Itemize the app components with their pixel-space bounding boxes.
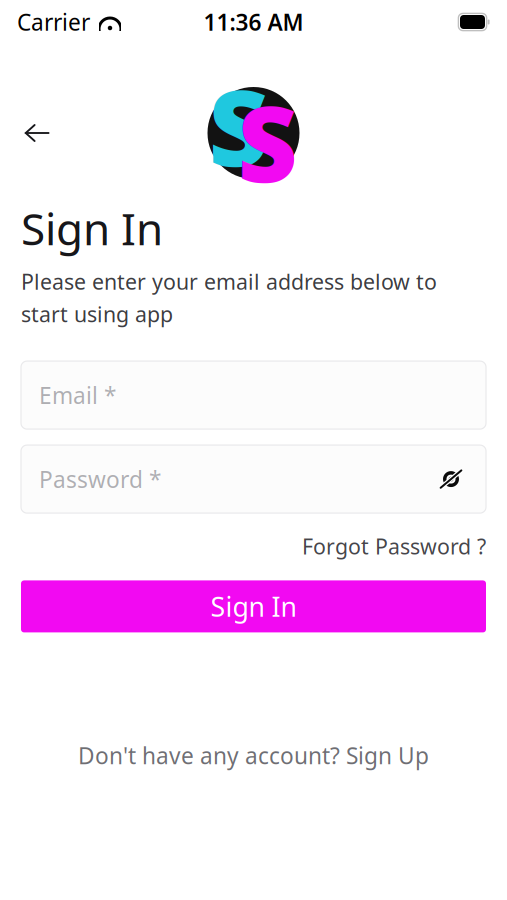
button[interactable]: Back — [15, 111, 59, 155]
staticText: Sign In — [210, 589, 296, 624]
staticText: Sign In — [21, 199, 163, 257]
staticText: S — [237, 73, 297, 211]
staticText: Don't have any account? Sign Up — [78, 740, 429, 770]
staticText: S — [208, 57, 268, 195]
button[interactable]: Don't have any account? Sign Up — [21, 732, 486, 778]
staticText: Carrier — [17, 7, 90, 37]
staticText: Email * — [39, 380, 116, 410]
button[interactable]: Forgot Password ? — [302, 526, 486, 566]
button[interactable]: Show password — [434, 464, 468, 494]
staticText: 11:36 AM — [203, 7, 303, 37]
staticText: Password * — [39, 464, 161, 494]
button[interactable]: Sign In — [21, 580, 486, 632]
staticText: Forgot Password ? — [302, 532, 486, 560]
staticText: Please enter your email address below to… — [21, 267, 437, 328]
